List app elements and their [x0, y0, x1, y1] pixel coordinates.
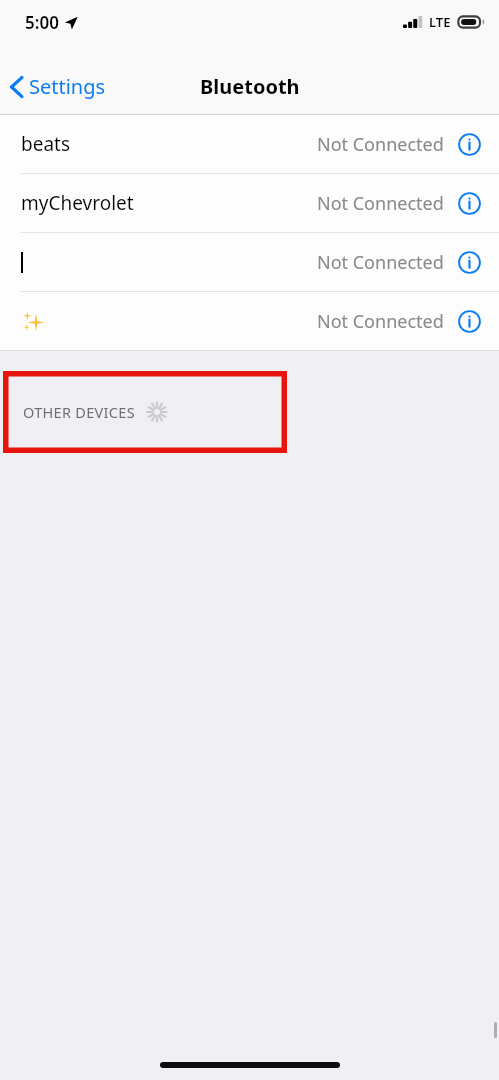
staticText: Not Connected: [317, 132, 444, 157]
button[interactable]: More info: [452, 127, 486, 161]
staticText: Settings: [29, 73, 106, 100]
staticText: LTE: [429, 13, 451, 31]
staticText: Not Connected: [317, 309, 444, 334]
button[interactable]: Not Connected: [0, 292, 499, 350]
button[interactable]: myChevrolet: [0, 174, 499, 232]
button[interactable]: Not Connected: [0, 233, 499, 291]
button[interactable]: beats: [0, 115, 499, 173]
button[interactable]: More info: [452, 304, 486, 338]
button[interactable]: More info: [452, 245, 486, 279]
staticText: OTHER DEVICES: [23, 402, 135, 422]
staticText: Not Connected: [317, 191, 444, 216]
staticText: Not Connected: [317, 250, 444, 275]
button[interactable]: Settings: [0, 65, 118, 108]
staticText: Bluetooth: [200, 73, 300, 100]
staticText: beats: [21, 131, 71, 157]
staticText: 5:00: [25, 11, 59, 34]
button[interactable]: More info: [452, 186, 486, 220]
staticText: myChevrolet: [21, 190, 134, 216]
